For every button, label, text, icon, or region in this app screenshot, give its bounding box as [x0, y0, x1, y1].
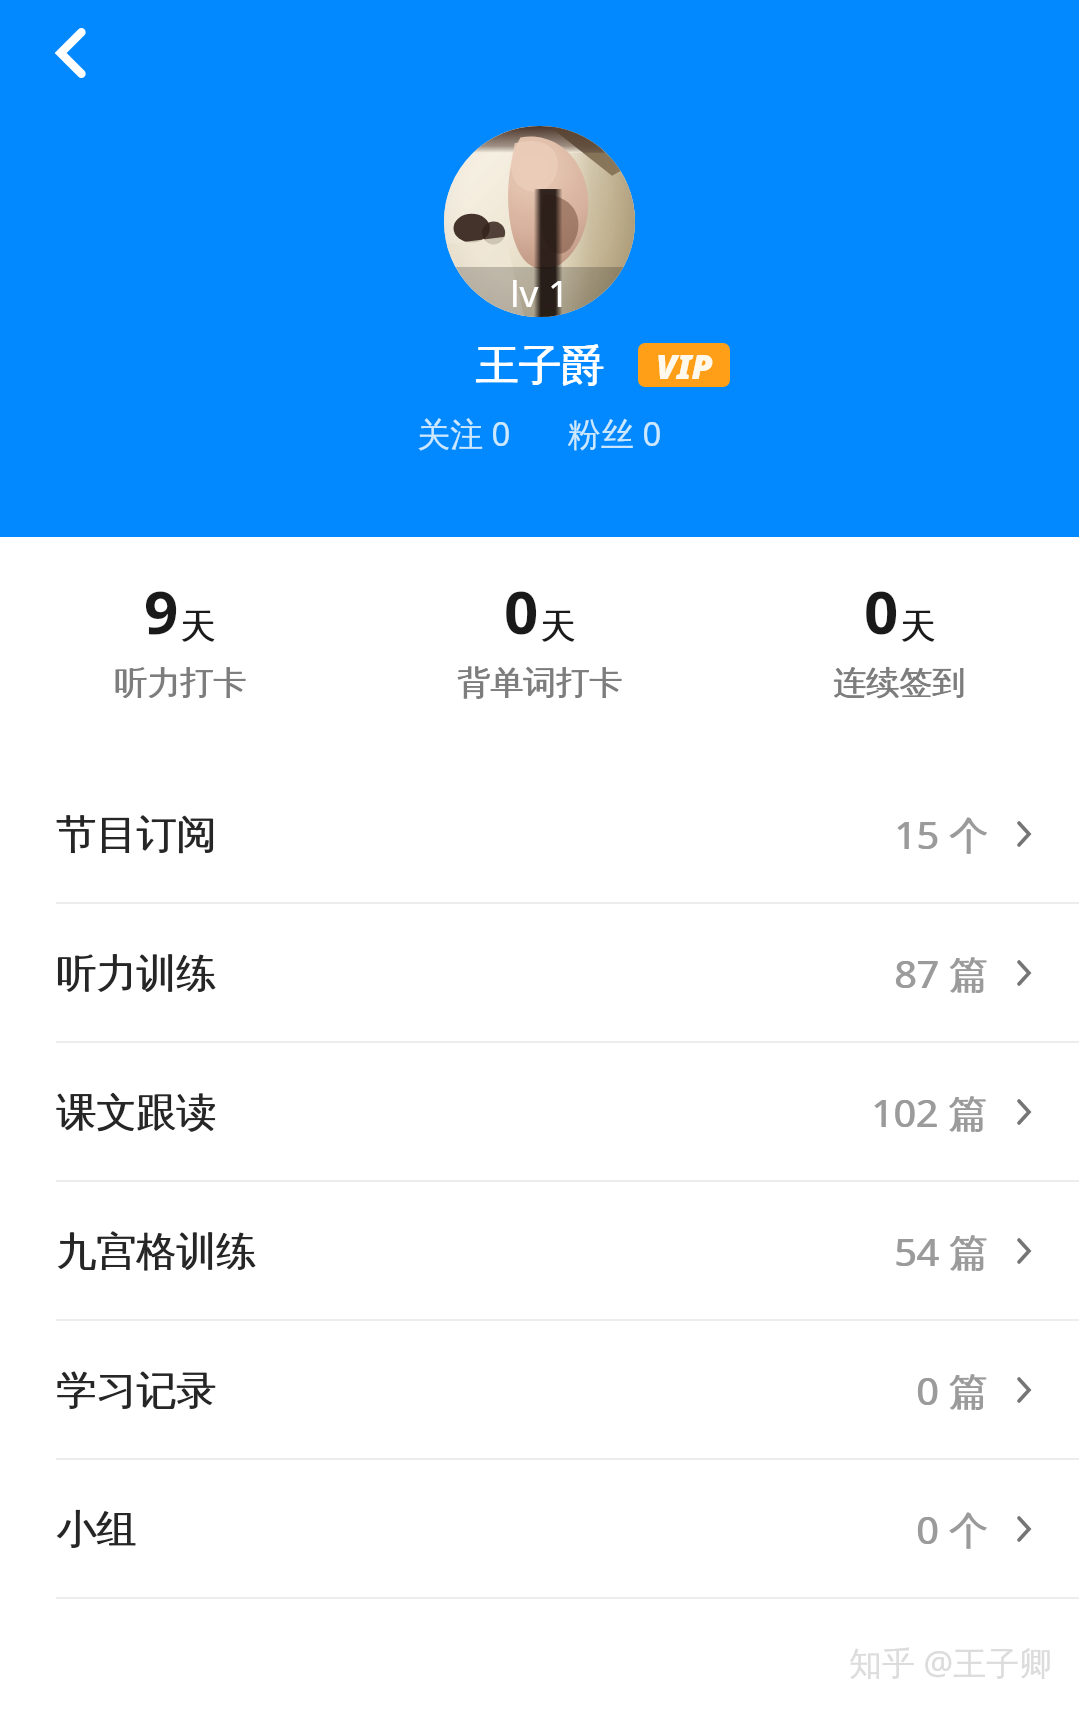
staticText: 54 篇 [894, 1224, 988, 1277]
staticText: 15 个 [894, 807, 988, 860]
staticText: 9 [144, 570, 179, 652]
staticText: VIP [656, 343, 713, 387]
staticText: 王子爵 [476, 339, 605, 393]
button[interactable]: VIP [638, 343, 730, 387]
staticText: 听力训练 [56, 948, 216, 998]
staticText: 0 个 [916, 1502, 988, 1555]
staticText: 87 篇 [894, 946, 988, 999]
staticText: 小组 [56, 1504, 136, 1554]
staticText: 15 个 [895, 807, 989, 860]
staticText: 关注 0 [417, 411, 511, 456]
staticText: 0 [504, 570, 539, 652]
staticText: 54 篇 [895, 1224, 989, 1277]
staticText: 背单词打卡 [457, 662, 622, 704]
button[interactable]: 听力训练 [0, 904, 1079, 1041]
staticText: 0 篇 [917, 1363, 989, 1416]
staticText: 课文跟读 [56, 1087, 216, 1137]
button[interactable]: 学习记录 [0, 1321, 1079, 1458]
button[interactable]: 9 [0, 537, 359, 765]
staticText: 102 篇 [871, 1085, 988, 1138]
staticText: 0 [864, 570, 899, 652]
button[interactable]: 0 [359, 537, 719, 765]
staticText: 听力训练 [57, 948, 217, 998]
staticText: 天 [901, 604, 936, 648]
staticText: 102 篇 [872, 1085, 989, 1138]
button[interactable]: 九宫格训练 [0, 1182, 1079, 1319]
staticText: 九宫格训练 [56, 1226, 256, 1276]
staticText: 小组 [57, 1504, 137, 1554]
button[interactable]: 小组 [0, 1460, 1079, 1597]
staticText: 知乎 @王子卿 [849, 1640, 1053, 1685]
button[interactable]: 0 [719, 537, 1079, 765]
button[interactable]: Back [20, 3, 120, 103]
staticText: lv 1 [510, 267, 570, 317]
staticText: 0 个 [917, 1502, 989, 1555]
staticText: 天 [540, 604, 575, 648]
staticText: 连续签到 [833, 662, 965, 704]
staticText: 课文跟读 [57, 1087, 217, 1137]
staticText: 连续签到 [834, 662, 966, 704]
button[interactable]: 关注 0 [417, 411, 511, 456]
staticText: 背单词打卡 [458, 662, 623, 704]
button[interactable]: Avatar [444, 126, 635, 317]
button[interactable]: 粉丝 0 [568, 411, 662, 456]
staticText: 学习记录 [57, 1365, 217, 1415]
staticText: 节目订阅 [57, 809, 217, 859]
staticText: 九宫格训练 [57, 1226, 257, 1276]
staticText: 天 [900, 604, 935, 648]
staticText: 节目订阅 [56, 809, 216, 859]
staticText: 87 篇 [895, 946, 989, 999]
staticText: 听力打卡 [115, 662, 247, 704]
staticText: 学习记录 [56, 1365, 216, 1415]
staticText: 听力打卡 [114, 662, 246, 704]
button[interactable]: 节目订阅 [0, 765, 1079, 902]
button[interactable]: 课文跟读 [0, 1043, 1079, 1180]
staticText: 天 [180, 604, 215, 648]
staticText: 0 篇 [916, 1363, 988, 1416]
staticText: 天 [541, 604, 576, 648]
staticText: 王子爵 [475, 339, 604, 393]
staticText: 天 [181, 604, 216, 648]
staticText: 粉丝 0 [568, 411, 662, 456]
